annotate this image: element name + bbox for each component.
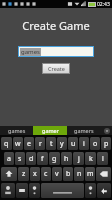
button[interactable]: h — [61, 152, 72, 165]
button[interactable]: z — [18, 167, 29, 181]
staticText: j — [78, 154, 80, 164]
button[interactable]: Comma — [29, 183, 40, 198]
staticText: o — [93, 139, 98, 149]
button[interactable]: u — [68, 137, 78, 150]
button[interactable]: Symbols — [1, 183, 15, 198]
staticText: gamer — [42, 127, 59, 134]
button[interactable]: l — [97, 152, 108, 165]
button[interactable]: k — [85, 152, 96, 165]
button[interactable]: g — [49, 152, 60, 165]
staticText: 02:43 — [97, 1, 110, 8]
button[interactable]: Create — [42, 63, 70, 74]
staticText: d — [29, 154, 34, 164]
button[interactable]: s — [15, 152, 25, 165]
button[interactable]: v — [52, 167, 62, 181]
button[interactable]: j — [73, 152, 84, 165]
button[interactable]: x — [30, 167, 40, 181]
button[interactable]: w — [13, 137, 23, 150]
button[interactable]: e — [24, 137, 34, 150]
button[interactable]: Enter — [97, 183, 111, 198]
staticText: c — [44, 169, 48, 179]
staticText: q — [4, 139, 9, 149]
staticText: games — [8, 127, 26, 134]
button[interactable]: t — [46, 137, 56, 150]
staticText: h — [64, 154, 69, 164]
button[interactable]: Language — [16, 183, 28, 198]
button[interactable]: c — [41, 167, 51, 181]
staticText: n — [77, 169, 82, 179]
staticText: v — [55, 169, 59, 179]
button[interactable]: d — [26, 152, 36, 165]
staticText: p — [104, 139, 109, 149]
staticText: l — [102, 154, 104, 164]
staticText: games — [21, 48, 40, 56]
button[interactable]: Backspace — [96, 167, 111, 181]
staticText: a — [7, 154, 11, 164]
staticText: e — [27, 139, 31, 149]
staticText: k — [89, 154, 93, 164]
staticText: b — [66, 169, 71, 179]
button[interactable]: p — [101, 137, 111, 150]
button[interactable]: q — [1, 137, 12, 150]
button[interactable]: gamers — [67, 126, 101, 135]
staticText: gamers — [74, 127, 94, 134]
button[interactable]: r — [35, 137, 45, 150]
button[interactable]: Space — [41, 183, 84, 198]
button[interactable]: More suggestions — [101, 126, 112, 135]
button[interactable]: o — [90, 137, 100, 150]
button[interactable]: games — [18, 46, 94, 57]
staticText: t — [50, 139, 53, 149]
staticText: g — [52, 154, 57, 164]
button[interactable]: b — [63, 167, 73, 181]
button[interactable]: a — [4, 152, 14, 165]
button[interactable]: m — [85, 167, 95, 181]
staticText: i — [83, 139, 85, 149]
staticText: z — [22, 169, 26, 179]
staticText: w — [15, 139, 21, 149]
button[interactable]: Shift — [1, 167, 17, 181]
staticText: u — [71, 139, 76, 149]
staticText: y — [60, 139, 64, 149]
staticText: f — [41, 154, 44, 164]
button[interactable]: i — [79, 137, 89, 150]
staticText: m — [87, 169, 94, 179]
button[interactable]: n — [74, 167, 84, 181]
staticText: x — [33, 169, 37, 179]
button[interactable]: games — [0, 126, 33, 135]
staticText: Create Game — [22, 18, 90, 33]
staticText: Create — [48, 65, 65, 72]
button[interactable]: y — [57, 137, 67, 150]
staticText: r — [39, 139, 42, 149]
button[interactable]: f — [37, 152, 48, 165]
button[interactable]: Period — [85, 183, 96, 198]
button[interactable]: gamer — [33, 126, 67, 135]
staticText: s — [18, 154, 22, 164]
